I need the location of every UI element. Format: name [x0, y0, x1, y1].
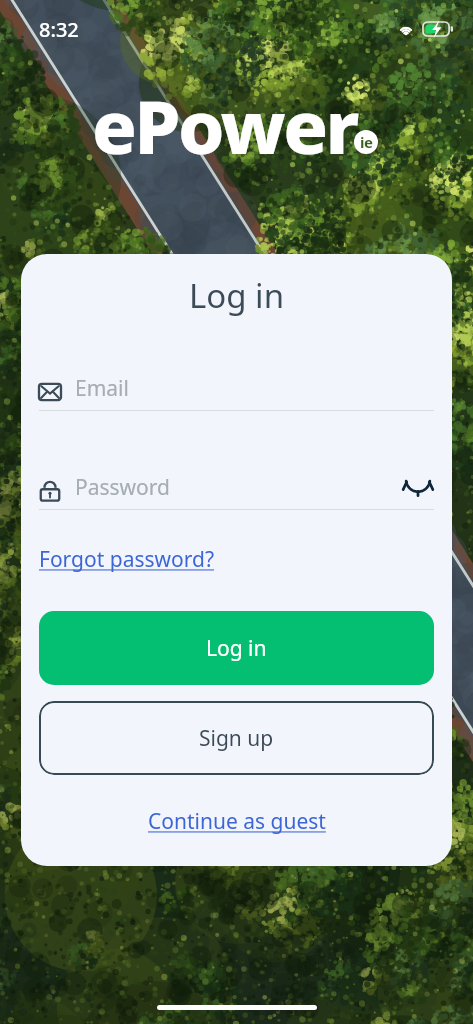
staticText: Email	[75, 374, 129, 403]
staticText: Password	[75, 473, 170, 502]
staticText: 8:32	[39, 16, 79, 43]
staticText: Log in	[39, 273, 434, 318]
button[interactable]: Continue as guest	[148, 807, 326, 836]
staticText: Continue as guest	[148, 807, 326, 836]
staticText: Log in	[206, 634, 267, 663]
staticText: Sign up	[199, 724, 274, 753]
staticText: Forgot password?	[39, 545, 215, 574]
button[interactable]: Sign up	[39, 701, 434, 775]
button[interactable]: Show password	[402, 476, 434, 493]
button[interactable]: Forgot password?	[39, 545, 215, 574]
staticText: ePower	[92, 75, 357, 176]
button[interactable]: Log in	[39, 611, 434, 685]
staticText: ie	[360, 132, 373, 152]
